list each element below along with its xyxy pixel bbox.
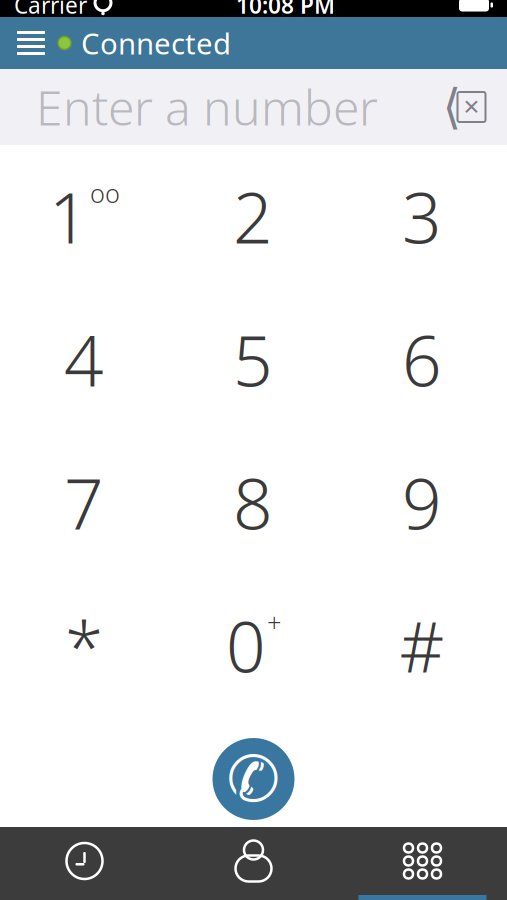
button[interactable]: Menu <box>4 17 58 69</box>
staticText: 2 <box>233 170 273 263</box>
button[interactable]: Connected <box>58 11 241 74</box>
button[interactable]: Keypad <box>338 827 507 900</box>
button[interactable]: 9 <box>338 431 507 574</box>
staticText: 3 <box>402 170 442 263</box>
staticText: oo <box>90 176 120 210</box>
button[interactable]: 2 <box>169 145 338 288</box>
button[interactable]: 5 <box>169 288 338 431</box>
button[interactable]: 7 <box>0 431 169 574</box>
button[interactable]: Recents <box>0 827 169 900</box>
button[interactable]: # <box>338 574 507 717</box>
staticText: # <box>399 599 444 692</box>
staticText: 5 <box>233 313 273 406</box>
button[interactable]: 4 <box>0 288 169 431</box>
staticText: * <box>65 599 103 692</box>
staticText: 1 <box>49 170 89 263</box>
staticText: 9 <box>402 456 442 549</box>
staticText: 7 <box>64 456 104 549</box>
button[interactable]: 0 <box>169 574 338 717</box>
staticText: 8 <box>233 456 273 549</box>
button[interactable]: Contacts <box>169 827 338 900</box>
staticText: 0 <box>226 599 266 692</box>
staticText: ✕ <box>462 95 480 119</box>
staticText: Carrier <box>14 0 87 20</box>
button[interactable]: 1 <box>0 145 169 288</box>
staticText: 6 <box>402 313 442 406</box>
staticText: Connected <box>81 23 231 62</box>
staticText: ✆ <box>226 743 280 815</box>
button[interactable]: * <box>0 574 169 717</box>
button[interactable]: 6 <box>338 288 507 431</box>
button[interactable]: 8 <box>169 431 338 574</box>
button[interactable]: Backspace <box>431 77 497 137</box>
staticText: 10:08 PM <box>236 0 335 20</box>
staticText: 4 <box>64 313 104 406</box>
staticText: + <box>267 605 281 639</box>
staticText: Enter a number <box>36 75 378 139</box>
button[interactable]: 3 <box>338 145 507 288</box>
button[interactable]: Call <box>205 731 301 827</box>
staticText: ⟨ <box>442 80 461 134</box>
